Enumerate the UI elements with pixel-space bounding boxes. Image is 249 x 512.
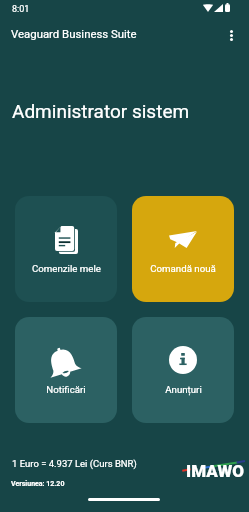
button[interactable]: Anunțuri [132, 317, 234, 423]
staticText: Anunțuri [165, 384, 202, 395]
button[interactable]: Comandă nouă [132, 196, 234, 302]
staticText: Comenzile mele [32, 263, 101, 274]
button[interactable]: More options [219, 23, 243, 47]
staticText: IMAWO [186, 461, 244, 481]
staticText: Versiunea: 12.20 [11, 480, 65, 488]
button[interactable]: Comenzile mele [15, 196, 117, 302]
staticText: Comandă nouă [150, 263, 216, 274]
button[interactable]: Notificări [15, 317, 117, 423]
staticText: Notificări [46, 384, 86, 395]
staticText: 1 Euro = 4.937 Lei (Curs BNR) [12, 458, 137, 469]
staticText: 8:01 [12, 4, 30, 15]
staticText: Administrator sistem [12, 100, 190, 122]
staticText: Veaguard Business Suite [11, 27, 137, 40]
